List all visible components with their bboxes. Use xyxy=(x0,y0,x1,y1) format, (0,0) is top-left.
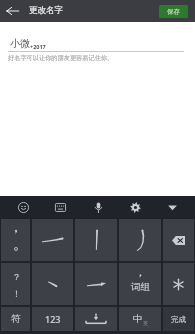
staticText: 好名字可以让你的朋友更容易记住你。 xyxy=(8,54,114,62)
button[interactable] xyxy=(32,263,73,305)
staticText: 完成 xyxy=(171,315,186,324)
staticText: 更改名字 xyxy=(29,5,63,16)
button[interactable]: 完成 xyxy=(163,307,194,331)
button[interactable] xyxy=(75,307,117,331)
button[interactable] xyxy=(32,219,73,261)
button[interactable]: 符 xyxy=(1,307,30,331)
staticText: ！ xyxy=(12,288,20,297)
staticText: 小微 xyxy=(10,37,30,50)
button[interactable] xyxy=(163,219,194,261)
button[interactable]: Voice input xyxy=(84,196,112,218)
button[interactable]: 保存 xyxy=(159,5,188,18)
button[interactable]: question and exclamation xyxy=(1,263,30,305)
staticText: 英 xyxy=(143,320,148,326)
button[interactable]: 中 xyxy=(119,307,161,331)
button[interactable]: Hide keyboard xyxy=(158,196,186,218)
button[interactable]: Back xyxy=(0,0,24,22)
button[interactable] xyxy=(119,219,161,261)
button[interactable]: 123 xyxy=(32,307,73,331)
staticText: 符 xyxy=(11,313,21,325)
button[interactable] xyxy=(163,263,194,305)
button[interactable]: 词组 xyxy=(119,263,161,305)
button[interactable]: comma and period xyxy=(1,219,30,261)
button[interactable]: Emoji xyxy=(9,196,37,218)
staticText: 中 xyxy=(133,313,143,325)
staticText: 123 xyxy=(45,313,61,325)
staticText: 保存 xyxy=(167,8,180,16)
staticText: 词组 xyxy=(131,281,150,293)
staticText: +2017 xyxy=(30,43,46,50)
button[interactable] xyxy=(75,263,117,305)
button[interactable]: Settings xyxy=(121,196,149,218)
button[interactable]: Keyboard layout xyxy=(46,196,74,218)
button[interactable] xyxy=(75,219,117,261)
staticText: ？ xyxy=(12,271,20,280)
